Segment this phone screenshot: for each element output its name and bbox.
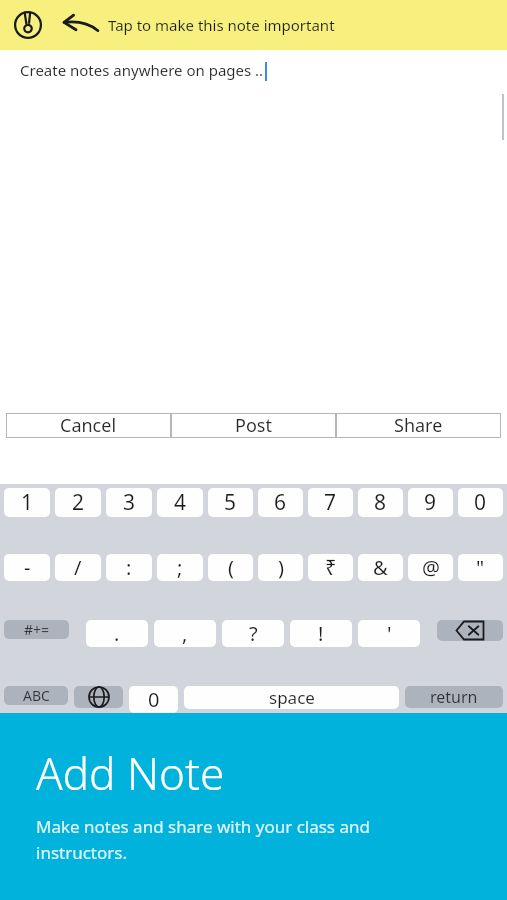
staticText: 1 xyxy=(21,488,34,517)
staticText: Post xyxy=(235,413,272,438)
staticText: ( xyxy=(228,554,234,581)
staticText: ' xyxy=(387,620,392,647)
staticText: ABC xyxy=(23,686,50,705)
button[interactable]: 3 xyxy=(106,488,152,517)
button[interactable]: - xyxy=(4,554,50,581)
button[interactable]: 1 xyxy=(4,488,50,517)
staticText: 8 xyxy=(374,488,387,517)
staticText: , xyxy=(182,620,188,647)
staticText: @ xyxy=(422,554,440,581)
button[interactable]: #+= xyxy=(4,620,69,639)
staticText: Add Note xyxy=(36,743,225,803)
button[interactable]: ABC xyxy=(4,686,68,705)
staticText: ₹ xyxy=(325,554,337,581)
button[interactable]: : xyxy=(106,554,152,581)
staticText: 9 xyxy=(424,488,437,517)
staticText: 6 xyxy=(274,488,287,517)
button[interactable]: ; xyxy=(157,554,203,581)
button[interactable]: Post xyxy=(171,413,336,438)
staticText: : xyxy=(126,554,132,581)
button[interactable]: Mark note important xyxy=(0,0,507,50)
staticText: / xyxy=(74,554,82,581)
button[interactable]: ( xyxy=(208,554,253,581)
button[interactable]: & xyxy=(358,554,403,581)
button[interactable]: . xyxy=(86,620,148,647)
staticText: Create notes anywhere on pages .. xyxy=(20,60,264,80)
staticText: 0 xyxy=(474,488,487,517)
staticText: 3 xyxy=(123,488,136,517)
button[interactable]: return xyxy=(405,686,503,708)
staticText: ) xyxy=(278,554,284,581)
staticText: ! xyxy=(318,620,324,647)
button[interactable]: ! xyxy=(290,620,352,647)
button[interactable]: 7 xyxy=(308,488,353,517)
staticText: Cancel xyxy=(60,413,117,438)
button[interactable]: 2 xyxy=(55,488,101,517)
staticText: 5 xyxy=(224,488,237,517)
button[interactable]: @ xyxy=(408,554,453,581)
button[interactable]: ? xyxy=(222,620,284,647)
button[interactable]: space xyxy=(184,686,399,709)
button[interactable]: 8 xyxy=(358,488,403,517)
button[interactable]: ₹ xyxy=(308,554,353,581)
staticText: #+= xyxy=(24,620,50,639)
button[interactable]: Mark note important xyxy=(10,7,46,43)
button[interactable]: 0 xyxy=(458,488,503,517)
staticText: . xyxy=(114,620,120,647)
button[interactable]: ' xyxy=(358,620,420,647)
button[interactable]: Share xyxy=(336,413,501,438)
button[interactable]: 9 xyxy=(408,488,453,517)
staticText: Tap to make this note important xyxy=(108,15,335,35)
button[interactable]: 4 xyxy=(157,488,203,517)
staticText: ? xyxy=(249,620,258,647)
staticText: " xyxy=(476,554,485,581)
button[interactable]: 5 xyxy=(208,488,253,517)
staticText: Share xyxy=(394,413,443,438)
button[interactable]: ) xyxy=(258,554,303,581)
button[interactable]: 0 xyxy=(129,686,178,713)
staticText: 4 xyxy=(174,488,187,517)
button[interactable]: / xyxy=(55,554,101,581)
button[interactable]: Backspace xyxy=(437,620,503,641)
button[interactable]: " xyxy=(458,554,503,581)
staticText: 2 xyxy=(72,488,85,517)
button[interactable]: , xyxy=(154,620,216,647)
button[interactable]: Change keyboard xyxy=(74,686,123,708)
button[interactable]: Create notes anywhere on pages .. xyxy=(0,50,507,406)
staticText: return xyxy=(430,686,478,708)
staticText: space xyxy=(269,686,315,709)
button[interactable]: Cancel xyxy=(6,413,171,438)
staticText: & xyxy=(373,554,388,581)
button[interactable]: 6 xyxy=(258,488,303,517)
staticText: Make notes and share with your class and… xyxy=(36,815,370,864)
other: Arrow xyxy=(60,12,100,38)
staticText: 0 xyxy=(148,686,160,713)
staticText: ; xyxy=(177,554,183,581)
staticText: 7 xyxy=(324,488,337,517)
staticText: - xyxy=(24,554,31,581)
